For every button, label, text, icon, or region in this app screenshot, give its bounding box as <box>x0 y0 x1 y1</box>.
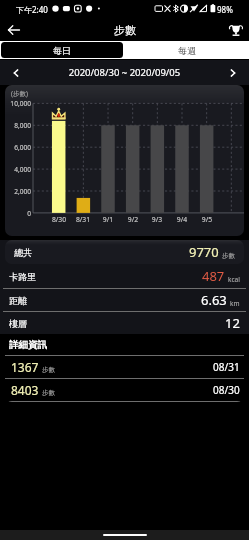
button[interactable]: Next week <box>217 60 249 85</box>
staticText: 4,000 <box>5 165 31 174</box>
button[interactable]: 每日 <box>1 42 123 58</box>
staticText: 下午2:40 <box>16 4 48 15</box>
staticText: 9770 <box>189 243 219 261</box>
button[interactable]: 距離 <box>0 289 249 311</box>
button[interactable]: 卡路里 <box>0 264 249 288</box>
staticText: 0 <box>5 209 31 218</box>
button[interactable]: Previous week <box>0 60 32 85</box>
staticText: 1367 <box>11 359 39 375</box>
staticText: 08/31 <box>213 360 240 374</box>
staticText: 8,000 <box>5 121 31 130</box>
button[interactable]: 每週 <box>124 41 249 59</box>
button[interactable]: Back <box>4 20 24 40</box>
staticText: 步數 <box>42 366 55 374</box>
staticText: 487 <box>202 267 225 285</box>
button[interactable]: 8403 <box>5 379 244 401</box>
staticText: 步數 <box>222 252 235 260</box>
staticText: 8403 <box>11 382 39 398</box>
staticText: (步數) <box>11 89 28 98</box>
staticText: 總共 <box>14 247 32 258</box>
staticText: 9/4 <box>171 215 193 224</box>
staticText: 6,000 <box>5 143 31 152</box>
staticText: 9/1 <box>97 215 119 224</box>
staticText: 步數 <box>114 23 136 37</box>
staticText: 12 <box>225 314 240 332</box>
button[interactable]: 樓層 <box>0 312 249 334</box>
button[interactable]: Achievements <box>227 21 245 39</box>
staticText: 10,000 <box>5 99 31 108</box>
staticText: 步數 <box>42 389 55 397</box>
staticText: 樓層 <box>9 318 27 329</box>
staticText: 98% <box>217 4 233 15</box>
staticText: 距離 <box>9 295 27 306</box>
staticText: 8/30 <box>48 215 70 224</box>
staticText: 8/31 <box>72 215 94 224</box>
button[interactable]: 總共 <box>5 240 244 264</box>
staticText: 9/3 <box>146 215 168 224</box>
staticText: 08/30 <box>213 383 240 397</box>
staticText: kcal <box>228 275 240 284</box>
staticText: 2,000 <box>5 187 31 196</box>
staticText: 卡路里 <box>9 271 36 282</box>
button[interactable]: 1367 <box>5 356 244 378</box>
staticText: km <box>230 299 240 308</box>
staticText: 詳細資訊 <box>9 339 47 351</box>
staticText: 9/2 <box>122 215 144 224</box>
staticText: 2020/08/30 ~ 2020/09/05 <box>32 66 217 79</box>
staticText: 每日 <box>53 45 71 56</box>
staticText: 6.63 <box>201 291 227 309</box>
staticText: 9/5 <box>196 215 218 224</box>
staticText: 每週 <box>178 45 196 56</box>
